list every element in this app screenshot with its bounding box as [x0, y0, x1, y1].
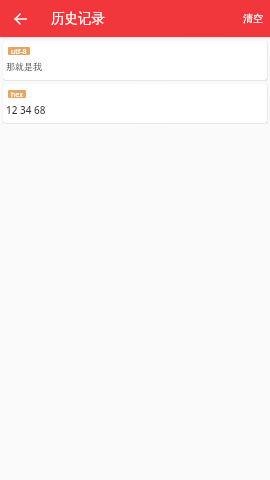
staticText: 12 34 68: [6, 103, 46, 117]
staticText: 历史记录: [51, 10, 105, 27]
button[interactable]: Back: [7, 5, 35, 33]
button[interactable]: 清空: [236, 4, 270, 33]
staticText: 清空: [243, 12, 263, 25]
button[interactable]: hex: [3, 84, 267, 123]
staticText: 那就是我: [6, 61, 42, 72]
staticText: utf-8: [11, 47, 27, 55]
staticText: hex: [11, 90, 23, 98]
button[interactable]: utf-8: [3, 41, 267, 80]
